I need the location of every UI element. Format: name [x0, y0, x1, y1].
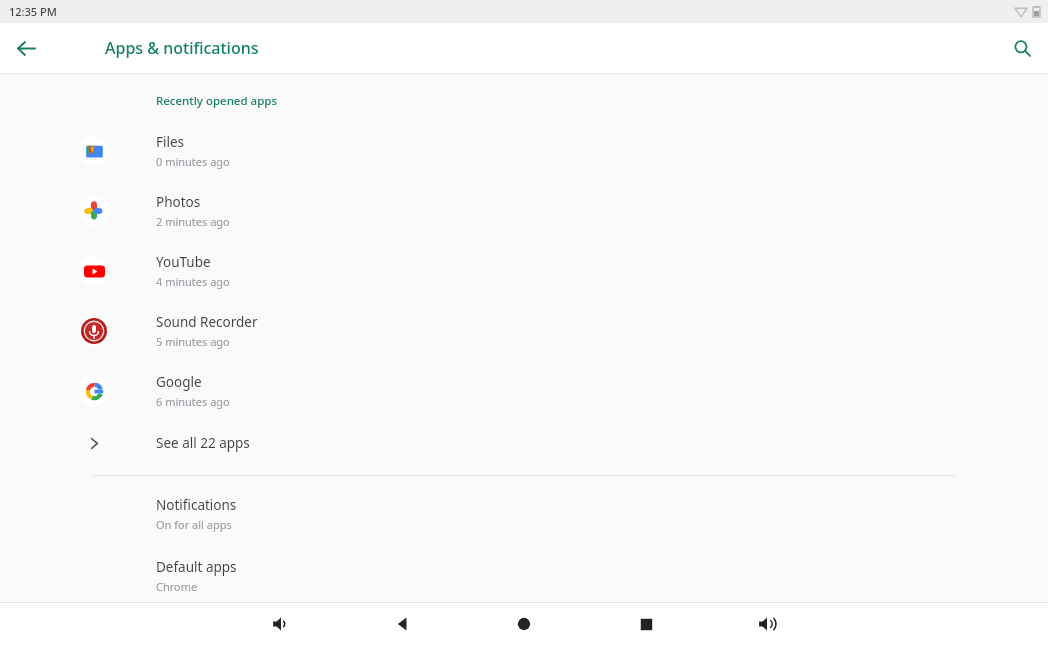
staticText: Apps & notifications	[105, 37, 259, 59]
staticText: Default apps	[156, 558, 237, 576]
button[interactable]: Back	[382, 603, 424, 645]
button[interactable]: See all 22 apps	[0, 421, 1048, 465]
button[interactable]: Home	[503, 603, 545, 645]
staticText: Recently opened apps	[156, 93, 278, 109]
button[interactable]: Back	[8, 30, 44, 66]
staticText: Notifications	[156, 496, 237, 514]
button[interactable]: Files	[0, 121, 1048, 181]
staticText: 2 minutes ago	[156, 214, 230, 229]
button[interactable]: Search	[1004, 30, 1040, 66]
staticText: Google	[156, 373, 202, 391]
staticText: 0 minutes ago	[156, 154, 230, 169]
button[interactable]: Recents	[625, 603, 667, 645]
staticText: 4 minutes ago	[156, 274, 230, 289]
staticText: YouTube	[156, 253, 211, 271]
staticText: See all 22 apps	[156, 434, 250, 452]
staticText: 6 minutes ago	[156, 394, 230, 409]
button[interactable]: Volume down	[260, 603, 302, 645]
button[interactable]: Sound Recorder	[0, 301, 1048, 361]
staticText: Chrome	[156, 579, 198, 594]
button[interactable]: Volume up	[746, 603, 788, 645]
staticText: Sound Recorder	[156, 313, 258, 331]
button[interactable]: Google	[0, 361, 1048, 421]
button[interactable]: Default apps	[0, 558, 1048, 602]
staticText: Files	[156, 133, 185, 151]
staticText: Photos	[156, 193, 201, 211]
button[interactable]: Notifications	[0, 496, 1048, 558]
staticText: On for all apps	[156, 517, 232, 532]
button[interactable]: YouTube	[0, 241, 1048, 301]
staticText: 5 minutes ago	[156, 334, 230, 349]
staticText: 12:35 PM	[9, 4, 57, 19]
button[interactable]: Photos	[0, 181, 1048, 241]
